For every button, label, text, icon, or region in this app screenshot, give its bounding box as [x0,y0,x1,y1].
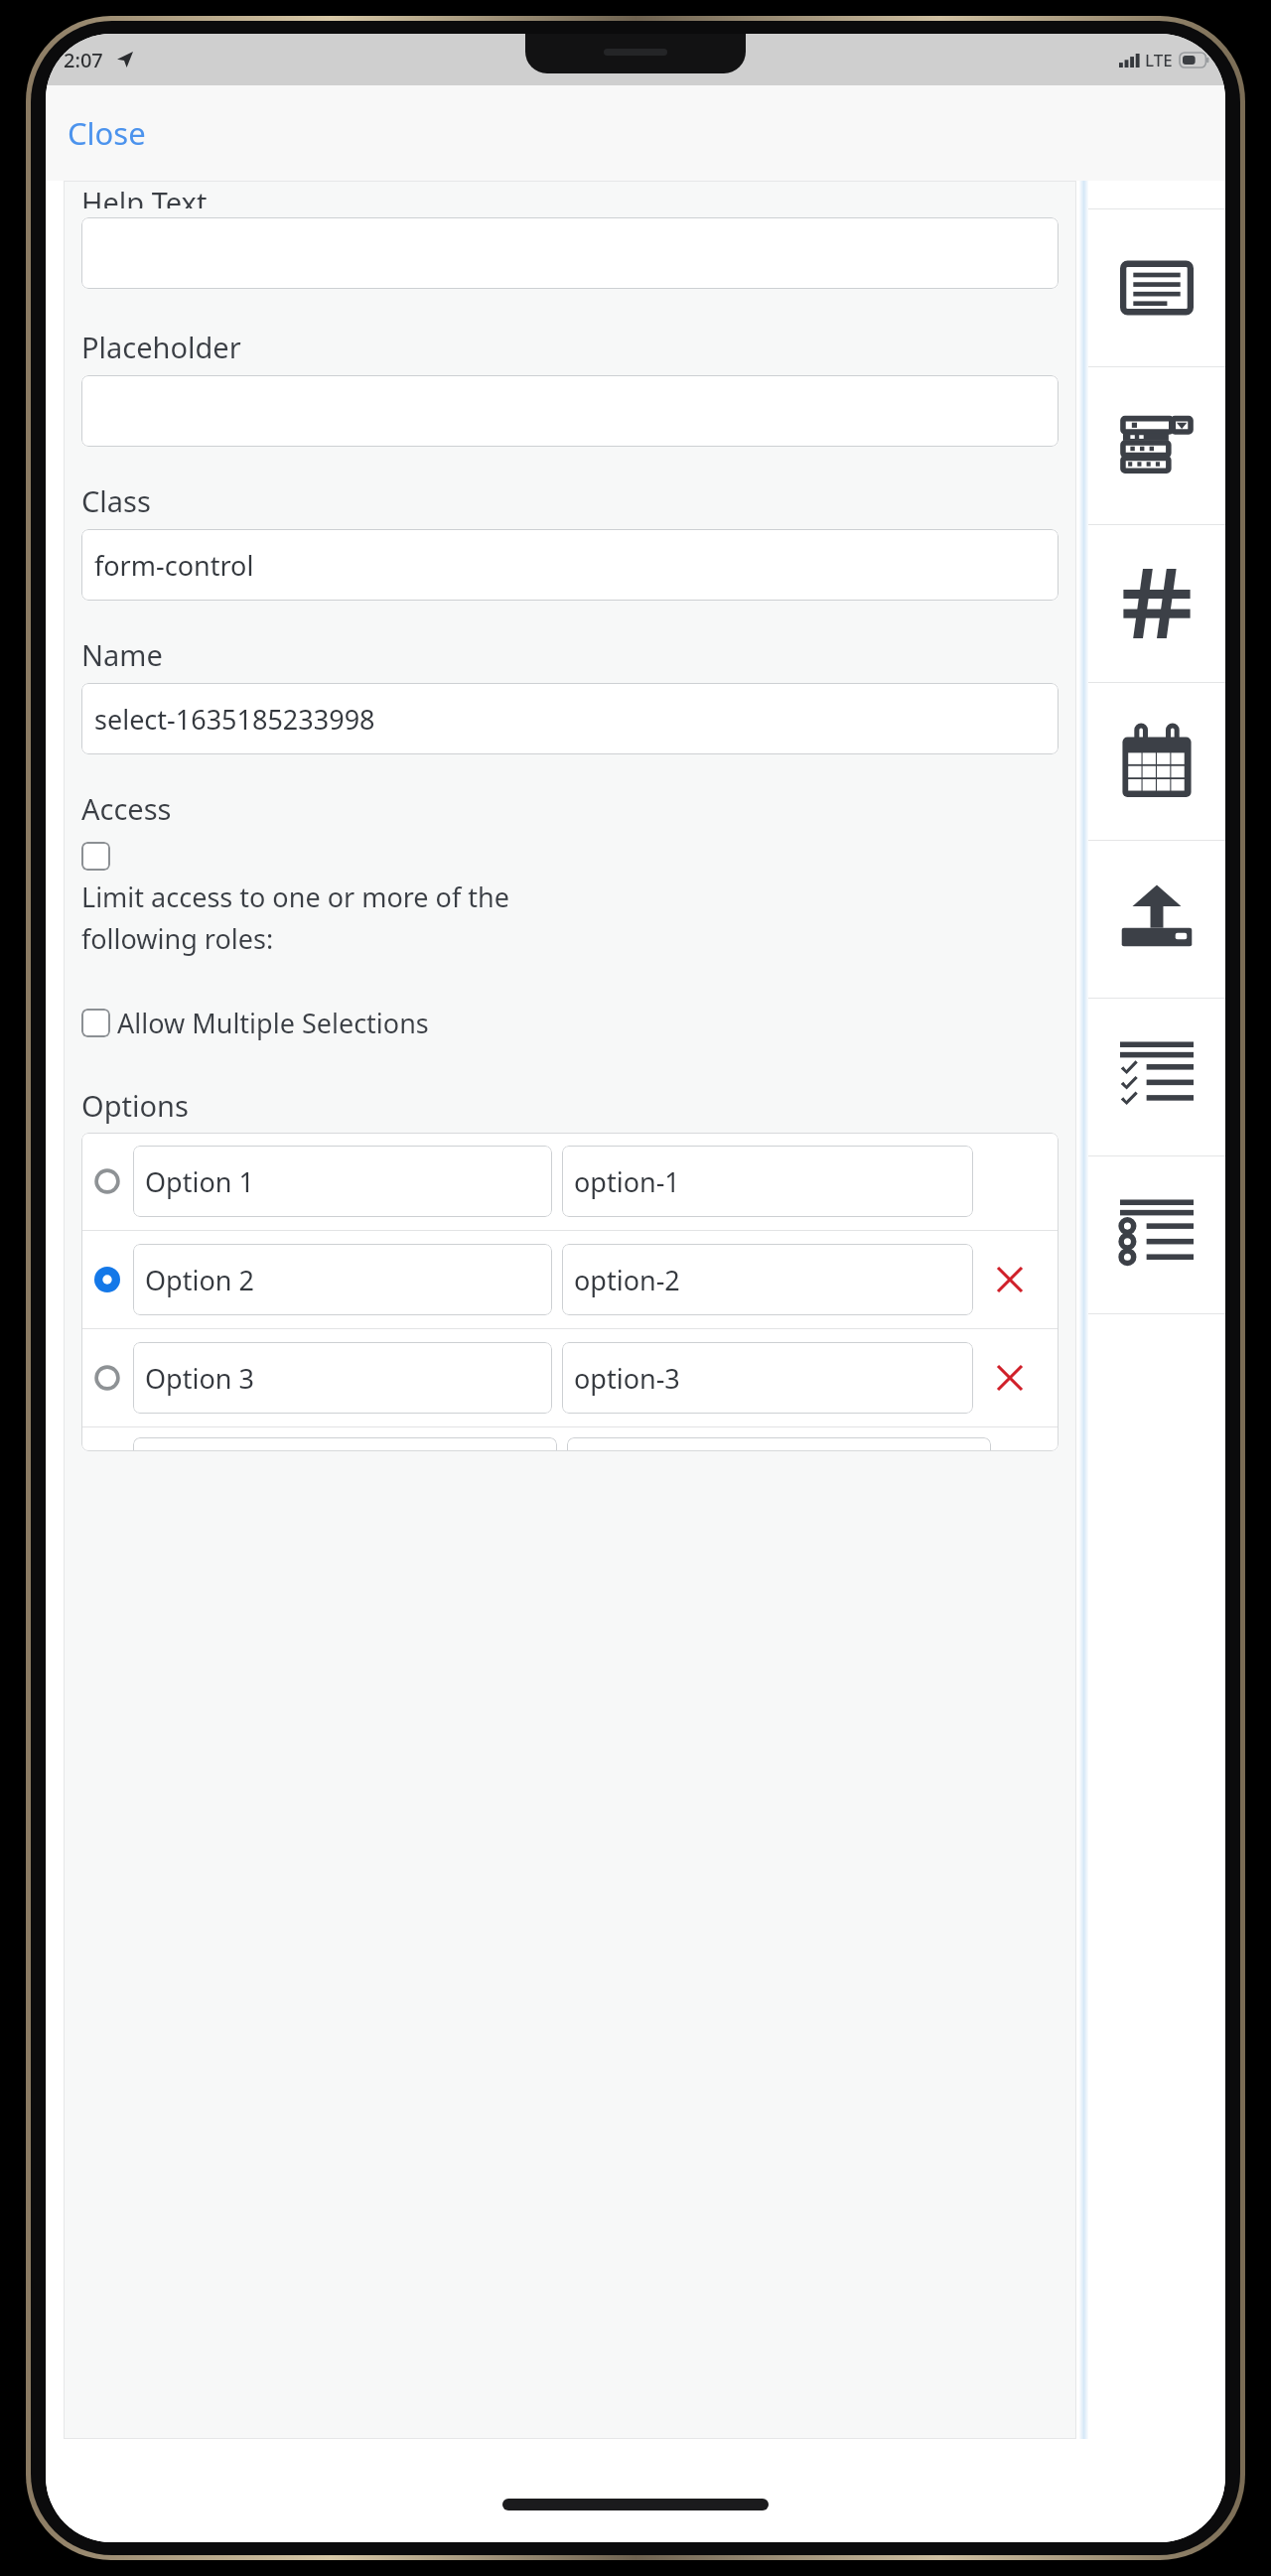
staticText: Close [68,112,146,154]
button[interactable]: File upload field [1088,841,1225,998]
staticText: Help Text [81,183,208,208]
staticText: Option 3 [145,1360,254,1397]
staticText: Allow Multiple Selections [117,1005,429,1041]
button[interactable]: Checkbox [81,1009,110,1037]
staticText: Option 1 [145,1163,254,1200]
staticText: 2:07 [64,47,103,73]
button[interactable] [81,217,1059,289]
button[interactable]: Checkbox [81,842,110,871]
button[interactable]: Select option [81,1329,1059,1426]
button[interactable]: Checkbox group [1088,999,1225,1155]
button[interactable]: Select option [81,1133,1059,1230]
button[interactable]: Remove option [987,1257,1033,1302]
button[interactable]: Textarea field [1088,209,1225,366]
button[interactable]: Select option [81,1231,1059,1328]
staticText: option-1 [574,1163,680,1200]
button[interactable]: Option 2 [133,1244,552,1315]
button[interactable]: Select option [93,1364,121,1392]
button[interactable]: Date field [1088,683,1225,840]
button[interactable]: form-control [81,529,1059,601]
button[interactable] [81,375,1059,447]
button[interactable]: Number field [1088,525,1225,682]
staticText: form-control [94,547,254,584]
button[interactable]: option-2 [562,1244,973,1315]
button[interactable]: Checkbox [81,1005,429,1041]
staticText: Options [81,1086,189,1125]
button[interactable]: Select option [93,1266,121,1293]
staticText: Placeholder [81,328,241,366]
staticText: LTE [1145,49,1173,71]
button[interactable]: Select option [93,1167,121,1195]
staticText: Class [81,481,151,520]
staticText: option-2 [574,1262,680,1298]
staticText: Limit access to one or more of the follo… [81,879,509,957]
staticText: Access [81,789,172,828]
button[interactable]: Close [56,104,158,162]
staticText: Name [81,635,163,674]
button[interactable]: option-1 [562,1146,973,1217]
button[interactable]: Remove option [987,1355,1033,1401]
button[interactable]: option-3 [562,1342,973,1414]
button[interactable]: Select field [1088,367,1225,524]
button[interactable]: select-1635185233998 [81,683,1059,754]
button[interactable]: Option 1 [133,1146,552,1217]
button[interactable]: Option 3 [133,1342,552,1414]
staticText: Option 2 [145,1262,254,1298]
staticText: option-3 [574,1360,680,1397]
staticText: select-1635185233998 [94,701,375,738]
button[interactable]: Radio group [1088,1156,1225,1313]
